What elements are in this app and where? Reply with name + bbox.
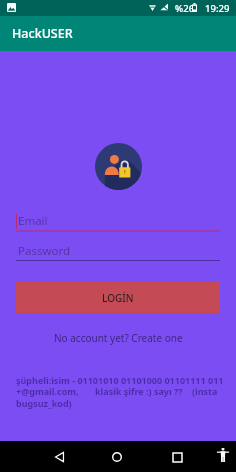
staticText: Email bbox=[18, 213, 48, 229]
staticText: 19:29 bbox=[205, 2, 230, 15]
button[interactable]: LOGİN bbox=[16, 282, 220, 313]
staticText: No account yet? Create one bbox=[54, 331, 183, 345]
staticText: Password bbox=[18, 243, 71, 259]
button[interactable]: Back bbox=[44, 442, 74, 472]
button[interactable]: Recent apps bbox=[162, 442, 192, 472]
button[interactable]: Accessibility bbox=[211, 443, 235, 467]
staticText: %26 bbox=[175, 2, 195, 15]
staticText: LOGİN bbox=[102, 291, 134, 305]
staticText: HackUSER bbox=[12, 25, 73, 42]
button[interactable]: No account yet? Create one bbox=[0, 331, 236, 345]
staticText: şüpheli:isim - 01101010 01101000 0110111… bbox=[16, 374, 228, 410]
button[interactable]: Home bbox=[102, 442, 132, 472]
